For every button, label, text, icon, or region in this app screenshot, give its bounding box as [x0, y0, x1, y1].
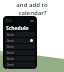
staticText: and add to [16, 1, 48, 9]
staticText: calendar? [18, 9, 47, 17]
staticText: Item [7, 68, 14, 69]
staticText: Item [7, 33, 14, 37]
button[interactable]: Item [5, 32, 35, 37]
staticText: Item [7, 63, 14, 67]
button[interactable]: Item [5, 56, 35, 61]
staticText: Schedule [6, 25, 29, 32]
button[interactable]: Item [5, 62, 35, 67]
button[interactable]: Item [5, 44, 35, 49]
staticText: Item [7, 45, 14, 49]
staticText: Item [7, 51, 14, 55]
staticText: Item [7, 57, 14, 61]
button[interactable]: Item [5, 50, 35, 55]
staticText: Item [7, 39, 14, 43]
staticText: 9:41 [6, 19, 12, 23]
button[interactable]: Item [5, 68, 35, 69]
button[interactable]: Item [5, 38, 35, 43]
